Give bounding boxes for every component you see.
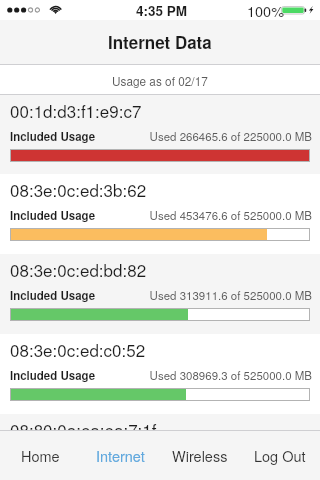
staticText: Wireless bbox=[172, 445, 228, 466]
button[interactable]: Home bbox=[0, 430, 80, 480]
staticText: Internet Data bbox=[108, 30, 212, 54]
staticText: Log Out bbox=[254, 445, 306, 466]
staticText: 00:1d:d3:f1:e9:c7 bbox=[10, 98, 142, 122]
staticText: Home bbox=[21, 445, 60, 466]
staticText: 4:35 PM bbox=[136, 1, 188, 20]
button[interactable]: 08:80:0a:ea:ea:7:1f bbox=[0, 414, 320, 430]
staticText: 08:80:0a:ea:ea:7:1f bbox=[10, 417, 157, 433]
button[interactable]: Log Out bbox=[240, 430, 320, 480]
button[interactable]: 08:3e:0c:ed:bd:82 bbox=[0, 254, 320, 334]
staticText: Internet bbox=[96, 445, 145, 466]
staticText: Included Usage bbox=[10, 287, 96, 303]
staticText: 08:3e:0c:ed:bd:82 bbox=[10, 257, 147, 281]
button[interactable]: 08:3e:0c:ed:3b:62 bbox=[0, 174, 320, 254]
button[interactable]: 00:1d:d3:f1:e9:c7 bbox=[0, 95, 320, 174]
staticText: 08:3e:0c:ed:3b:62 bbox=[10, 177, 147, 201]
button[interactable]: 08:3e:0c:ed:c0:52 bbox=[0, 334, 320, 414]
button[interactable]: Internet bbox=[80, 430, 160, 480]
staticText: Used 308969.3 of 525000.0 MB bbox=[96, 367, 312, 383]
staticText: Included Usage bbox=[10, 128, 96, 144]
staticText: 08:3e:0c:ed:c0:52 bbox=[10, 337, 146, 361]
staticText: Included Usage bbox=[10, 207, 96, 223]
staticText: Used 313911.6 of 525000.0 MB bbox=[96, 287, 312, 303]
staticText: Included Usage bbox=[10, 367, 96, 383]
staticText: Used 266465.6 of 225000.0 MB bbox=[96, 128, 312, 144]
staticText: 100% bbox=[247, 0, 285, 20]
button[interactable]: Wireless bbox=[160, 430, 240, 480]
staticText: Usage as of 02/17 bbox=[112, 72, 208, 89]
staticText: Used 453476.6 of 525000.0 MB bbox=[96, 207, 312, 223]
